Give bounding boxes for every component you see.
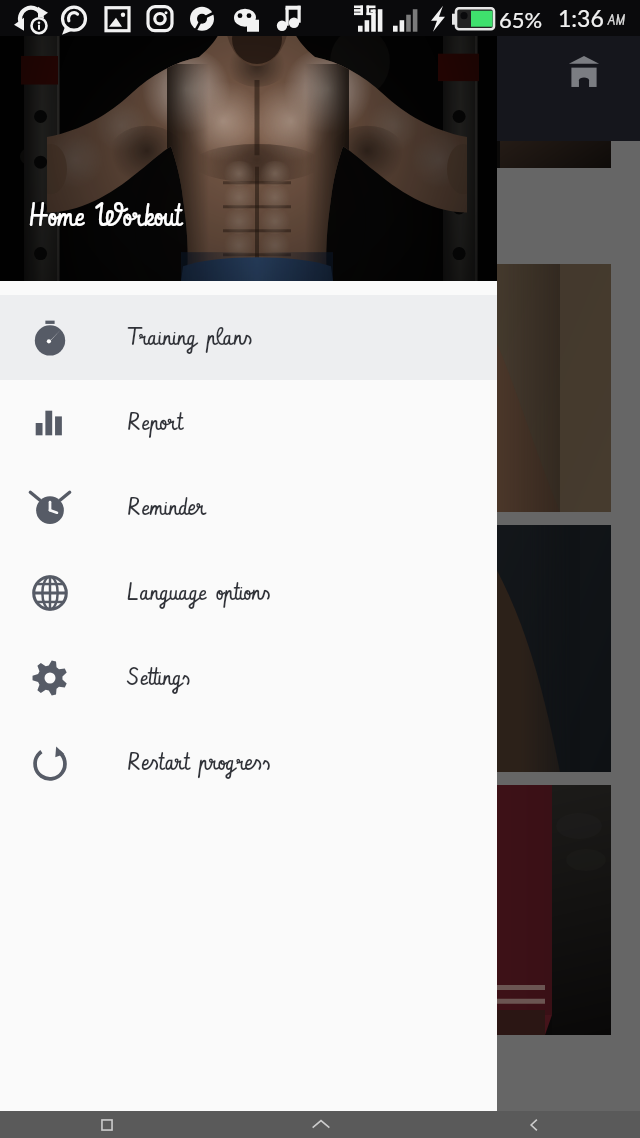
button[interactable]: Restart progress — [0, 720, 497, 805]
staticText: Settings — [127, 661, 190, 695]
staticText: 1:36 — [558, 4, 604, 32]
button[interactable]: Report — [0, 380, 497, 465]
staticText: AM — [608, 12, 626, 31]
button[interactable]: Home — [214, 1111, 427, 1138]
button[interactable]: Ads — [556, 43, 612, 99]
staticText: Restart progress — [127, 746, 271, 780]
button[interactable]: Settings — [0, 635, 497, 720]
button[interactable]: Recents — [0, 1111, 214, 1138]
staticText: Language options — [127, 576, 271, 610]
button[interactable]: Training plans — [0, 295, 497, 380]
staticText: Report — [127, 406, 183, 440]
button[interactable]: Reminder — [0, 465, 497, 550]
button[interactable]: Language options — [0, 550, 497, 635]
button[interactable]: Back — [427, 1111, 640, 1138]
staticText: 65% — [499, 6, 543, 32]
staticText: Reminder — [127, 491, 207, 525]
staticText: Training plans — [127, 321, 252, 355]
staticText: Home Workout — [29, 197, 181, 237]
